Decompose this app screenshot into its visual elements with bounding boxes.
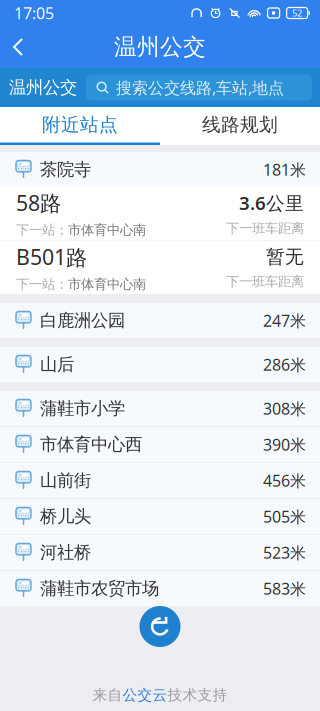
- staticText: 来自: [92, 686, 122, 704]
- button[interactable]: 河社桥: [0, 535, 320, 570]
- staticText: 17:05: [14, 2, 54, 24]
- staticText: 505米: [263, 506, 306, 527]
- staticText: 技术支持: [167, 686, 227, 704]
- staticText: 茶院寺: [40, 159, 91, 180]
- button[interactable]: 线路规划: [160, 107, 320, 145]
- staticText: 白鹿洲公园: [40, 310, 125, 331]
- button[interactable]: 搜索公交线路,车站,地点: [86, 74, 312, 100]
- button[interactable]: 蒲鞋市小学: [0, 391, 320, 426]
- button[interactable]: 市体育中心西: [0, 427, 320, 462]
- staticText: 蒲鞋市小学: [40, 398, 125, 419]
- staticText: 58路: [16, 189, 61, 217]
- button[interactable]: B501路: [0, 241, 320, 294]
- staticText: 线路规划: [202, 113, 278, 136]
- button[interactable]: 58路: [0, 187, 320, 240]
- staticText: 下一站：: [16, 222, 68, 238]
- staticText: 308米: [263, 398, 306, 419]
- button[interactable]: 蒲鞋市农贸市场: [0, 571, 320, 606]
- staticText: B501路: [16, 243, 87, 271]
- button[interactable]: Refresh: [139, 606, 180, 647]
- staticText: 市体育中心南: [68, 222, 146, 238]
- staticText: 523米: [263, 542, 306, 563]
- staticText: 市体育中心西: [40, 434, 142, 455]
- button[interactable]: 桥儿头: [0, 499, 320, 534]
- staticText: 下一班车距离: [226, 220, 304, 237]
- staticText: 456米: [263, 470, 306, 491]
- staticText: 181米: [263, 159, 306, 180]
- staticText: 桥儿头: [40, 506, 91, 527]
- staticText: 温州公交: [9, 77, 77, 98]
- button[interactable]: 山前街: [0, 463, 320, 498]
- staticText: 390米: [263, 434, 306, 455]
- button[interactable]: 茶院寺: [0, 152, 320, 187]
- staticText: 公交云: [122, 686, 167, 704]
- staticText: 搜索公交线路,车站,地点: [116, 77, 284, 98]
- staticText: 蒲鞋市农贸市场: [40, 578, 159, 599]
- staticText: 下一站：: [16, 276, 68, 292]
- staticText: 3.6公里: [239, 190, 304, 215]
- staticText: 247米: [263, 310, 306, 331]
- staticText: 下一班车距离: [226, 273, 304, 290]
- button[interactable]: 白鹿洲公园: [0, 303, 320, 338]
- staticText: 市体育中心南: [68, 276, 146, 292]
- staticText: 河社桥: [40, 542, 91, 563]
- button[interactable]: 温州公交: [0, 68, 86, 107]
- button[interactable]: 山后: [0, 347, 320, 382]
- staticText: 山后: [40, 354, 74, 375]
- staticText: 山前街: [40, 470, 91, 491]
- staticText: 583米: [263, 578, 306, 599]
- staticText: 温州公交: [114, 33, 206, 61]
- staticText: 286米: [263, 354, 306, 375]
- button[interactable]: Back: [0, 26, 34, 68]
- staticText: 暂无: [266, 245, 304, 268]
- staticText: 附近站点: [42, 113, 118, 136]
- staticText: 52: [292, 7, 302, 19]
- button[interactable]: 附近站点: [0, 107, 160, 145]
